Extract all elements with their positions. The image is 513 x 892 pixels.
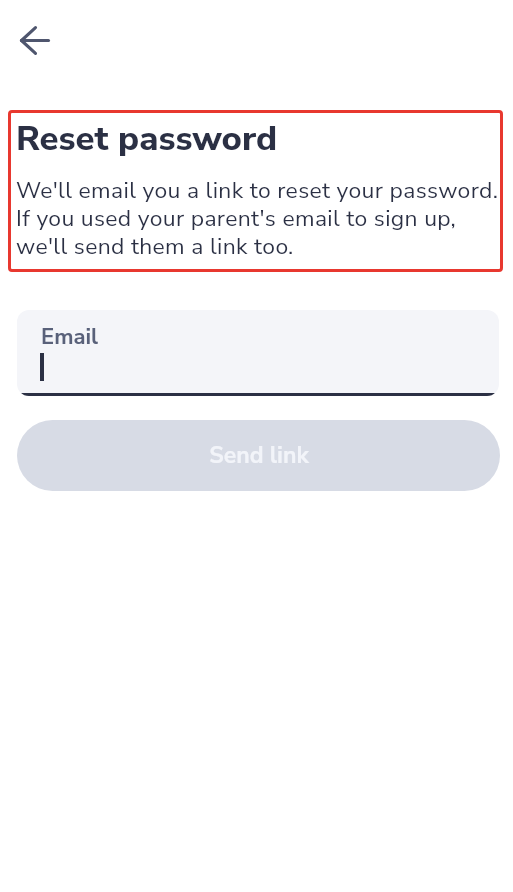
button[interactable]: Email <box>17 310 499 396</box>
staticText: Send link <box>209 440 309 471</box>
button[interactable]: Send link <box>17 420 500 491</box>
staticText: Email <box>41 322 99 352</box>
staticText: Reset password <box>16 115 277 162</box>
staticText: We'll email you a link to reset your pas… <box>16 175 499 262</box>
button[interactable]: Back <box>13 16 61 64</box>
